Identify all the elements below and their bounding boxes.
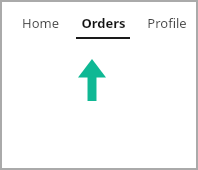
button[interactable]: Home xyxy=(16,12,65,41)
staticText: Profile xyxy=(147,14,187,32)
staticText: Home xyxy=(22,14,59,32)
other: Upward arrow pointing to Orders tab xyxy=(78,59,106,101)
staticText: Orders xyxy=(81,14,126,32)
button[interactable]: Profile xyxy=(141,12,193,41)
button[interactable]: Orders xyxy=(69,12,137,41)
